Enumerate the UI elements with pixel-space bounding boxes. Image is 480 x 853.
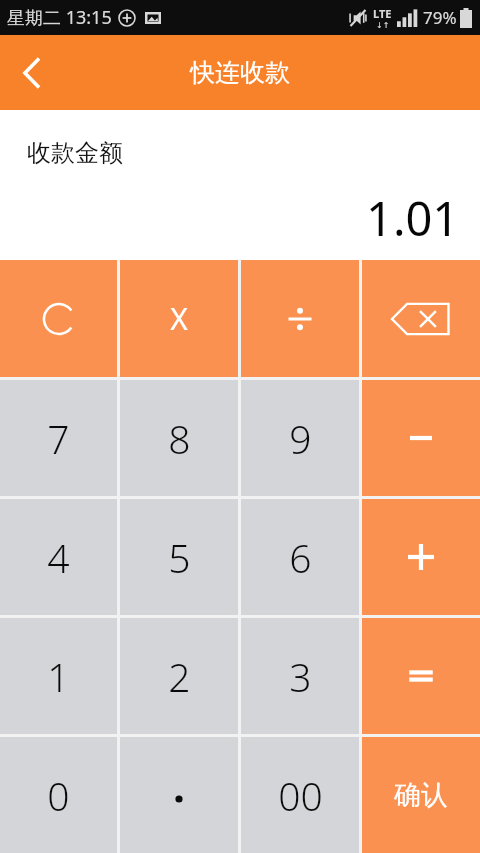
staticText: 9 xyxy=(289,412,312,465)
button[interactable]: X xyxy=(120,260,238,377)
staticText: 4 xyxy=(47,531,70,584)
button[interactable]: 8 xyxy=(120,380,238,496)
button[interactable] xyxy=(0,260,117,377)
button[interactable]: 4 xyxy=(0,499,117,615)
button[interactable] xyxy=(241,260,359,377)
button[interactable]: 1 xyxy=(0,618,117,734)
staticText: 79% xyxy=(423,6,457,29)
button[interactable] xyxy=(120,737,238,853)
button[interactable]: Backspace xyxy=(362,260,480,377)
button[interactable]: 0 xyxy=(0,737,117,853)
staticText: 0 xyxy=(47,769,70,822)
staticText: X xyxy=(170,298,188,339)
staticText: 00 xyxy=(278,769,323,822)
button[interactable]: Equals xyxy=(362,618,480,734)
staticText: LTE xyxy=(373,6,392,21)
button[interactable]: 00 xyxy=(241,737,359,853)
staticText: 确认 xyxy=(394,778,448,812)
button[interactable]: 7 xyxy=(0,380,117,496)
staticText: 收款金额 xyxy=(27,138,123,168)
button[interactable]: 9 xyxy=(241,380,359,496)
staticText: ↓↑ xyxy=(376,21,390,30)
button[interactable]: Plus xyxy=(362,499,480,615)
staticText: 2 xyxy=(168,650,191,703)
button[interactable]: 3 xyxy=(241,618,359,734)
staticText: 8 xyxy=(168,412,191,465)
staticText: 7 xyxy=(47,412,70,465)
staticText: 快连收款 xyxy=(190,57,290,88)
staticText: 1.01 xyxy=(366,186,460,250)
button[interactable]: 5 xyxy=(120,499,238,615)
button[interactable]: 6 xyxy=(241,499,359,615)
staticText: 1 xyxy=(47,650,70,703)
staticText: 5 xyxy=(168,531,191,584)
button[interactable]: 确认 xyxy=(362,737,480,853)
staticText: 6 xyxy=(289,531,312,584)
button[interactable]: Minus xyxy=(362,380,480,496)
staticText: 星期二 13:15 xyxy=(7,5,112,30)
staticText: 3 xyxy=(289,650,312,703)
button[interactable]: Back xyxy=(0,35,64,110)
button[interactable]: 2 xyxy=(120,618,238,734)
